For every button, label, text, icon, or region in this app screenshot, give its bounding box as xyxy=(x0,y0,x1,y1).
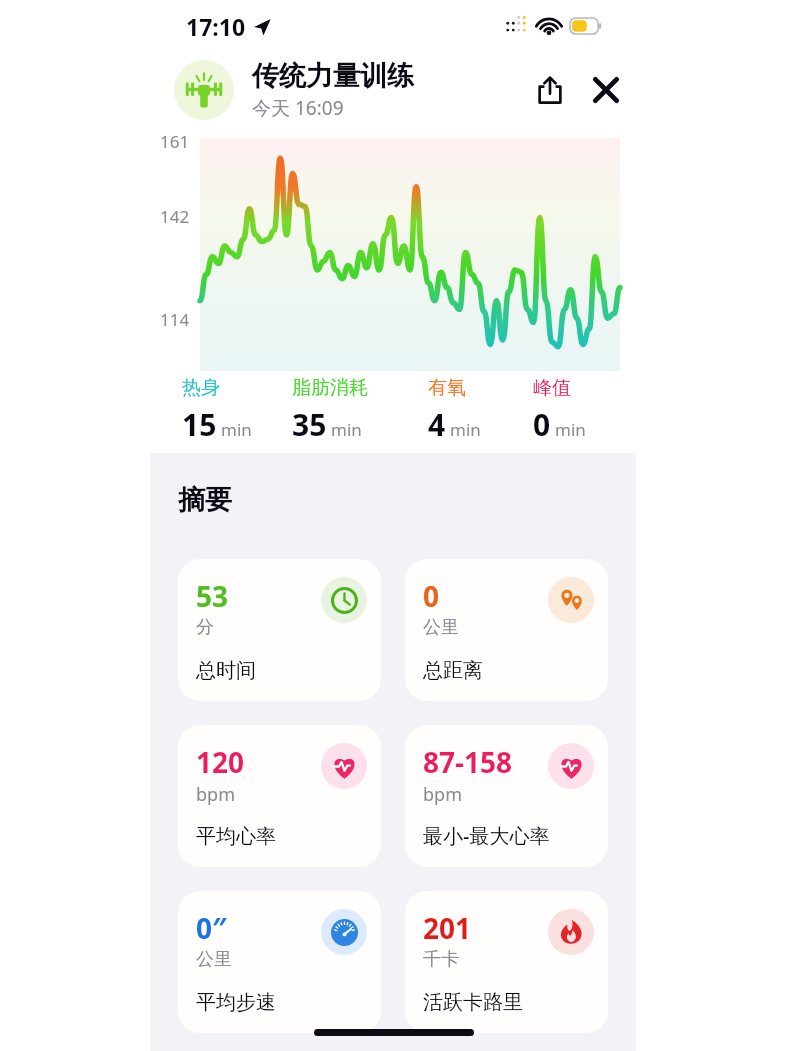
staticText: 0 xyxy=(533,404,551,445)
staticText: 今天 16:09 xyxy=(252,95,344,121)
button[interactable]: 0″ xyxy=(178,891,381,1033)
staticText: 公里 xyxy=(196,948,232,971)
button[interactable]: 53 xyxy=(178,559,381,701)
staticText: 平均步速 xyxy=(196,990,276,1015)
button[interactable]: 87-158 xyxy=(405,725,608,867)
button[interactable]: 120 xyxy=(178,725,381,867)
staticText: 201 xyxy=(423,909,472,947)
button[interactable]: Close xyxy=(584,68,628,112)
staticText: 公里 xyxy=(423,616,459,639)
staticText: 4 xyxy=(428,404,446,445)
staticText: 15 xyxy=(182,404,217,445)
staticText: 千卡 xyxy=(423,948,459,971)
staticText: 17:10 xyxy=(186,11,246,42)
staticText: 平均心率 xyxy=(196,824,276,849)
button[interactable]: 0 xyxy=(405,559,608,701)
staticText: 脂肪消耗 xyxy=(292,376,368,400)
staticText: 峰值 xyxy=(533,376,571,400)
staticText: 35 xyxy=(292,404,327,445)
staticText: min xyxy=(555,418,586,441)
staticText: 114 xyxy=(160,308,190,331)
staticText: 120 xyxy=(196,743,245,781)
button[interactable]: Share xyxy=(528,68,572,112)
staticText: 53 xyxy=(196,577,229,615)
staticText: 总距离 xyxy=(423,658,483,683)
staticText: min xyxy=(450,418,481,441)
staticText: 最小-最大心率 xyxy=(423,822,550,849)
staticText: 142 xyxy=(160,205,190,228)
button[interactable]: 201 xyxy=(405,891,608,1033)
staticText: bpm xyxy=(423,782,462,807)
staticText: min xyxy=(331,418,362,441)
staticText: 87-158 xyxy=(423,743,513,781)
staticText: 分 xyxy=(196,616,214,639)
staticText: bpm xyxy=(196,782,235,807)
staticText: 0 xyxy=(423,577,440,615)
staticText: 161 xyxy=(160,130,190,153)
staticText: 传统力量训练 xyxy=(252,59,414,93)
staticText: 摘要 xyxy=(178,483,232,517)
staticText: min xyxy=(221,418,252,441)
staticText: 热身 xyxy=(182,376,220,400)
staticText: 0″ xyxy=(196,909,227,947)
staticText: 有氧 xyxy=(428,376,466,400)
staticText: 总时间 xyxy=(196,658,256,683)
staticText: 活跃卡路里 xyxy=(423,990,523,1015)
